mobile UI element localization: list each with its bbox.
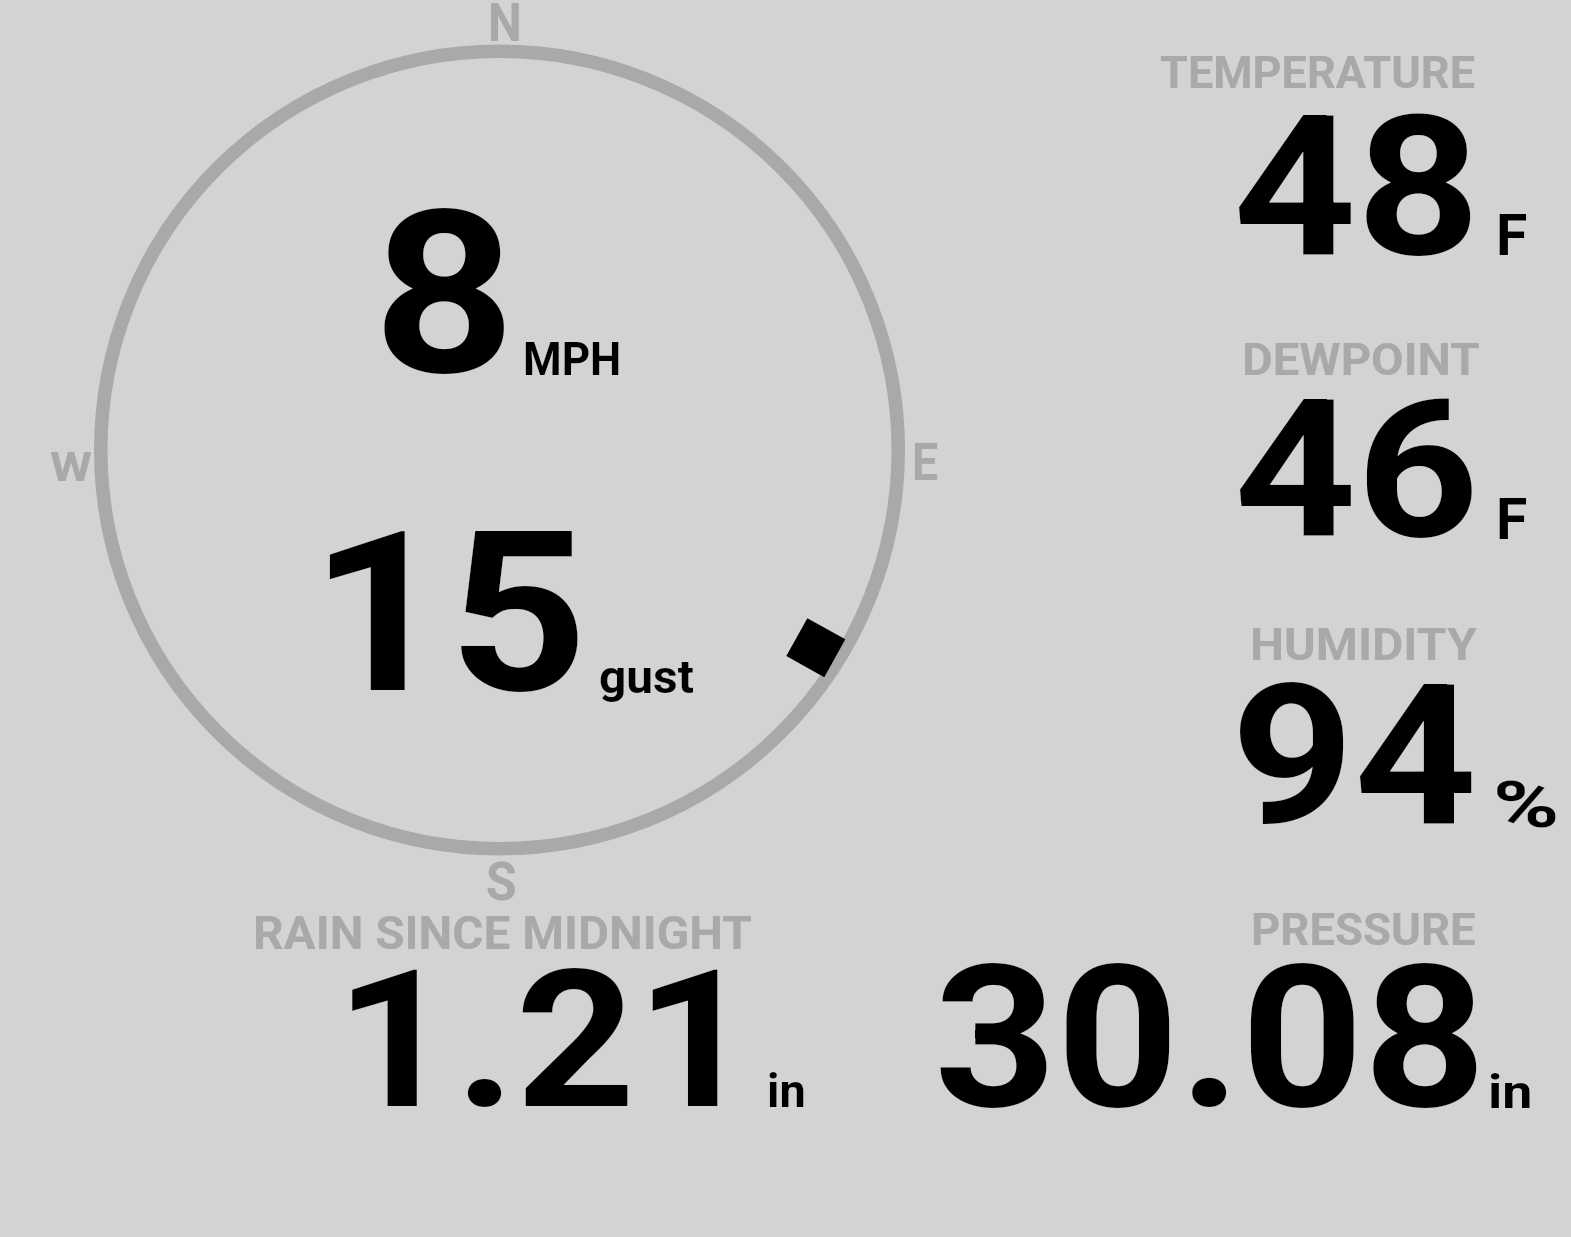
staticText: 1.21 bbox=[335, 928, 756, 1153]
staticText: S bbox=[486, 850, 517, 913]
staticText: N bbox=[488, 0, 522, 54]
staticText: E bbox=[912, 433, 938, 493]
staticText: F bbox=[1496, 202, 1528, 269]
staticText: gust bbox=[599, 650, 695, 704]
staticText: RAIN SINCE MIDNIGHT bbox=[253, 906, 752, 960]
staticText: F bbox=[1496, 486, 1528, 553]
staticText: TEMPERATURE bbox=[1160, 46, 1475, 99]
staticText: DEWPOINT bbox=[1242, 333, 1480, 386]
button[interactable]: Rain since midnight 1.21 inches bbox=[230, 900, 830, 1125]
staticText: HUMIDITY bbox=[1250, 618, 1477, 671]
staticText: in bbox=[767, 1064, 806, 1118]
staticText: PRESSURE bbox=[1251, 903, 1476, 956]
staticText: % bbox=[1493, 768, 1560, 843]
staticText: 15 bbox=[310, 484, 588, 744]
staticText: 46 bbox=[1234, 358, 1480, 583]
staticText: in bbox=[1488, 1065, 1532, 1119]
staticText: 94 bbox=[1231, 643, 1477, 870]
staticText: W bbox=[50, 444, 92, 491]
staticText: 30.08 bbox=[934, 921, 1487, 1154]
button[interactable]: Temperature 48 degrees Fahrenheit bbox=[1130, 40, 1560, 270]
button[interactable]: Wind: 8 miles per hour, gusting 15 bbox=[60, 10, 960, 910]
button[interactable]: Dewpoint 46 degrees Fahrenheit bbox=[1130, 325, 1560, 555]
staticText: MPH bbox=[523, 332, 622, 386]
button[interactable]: Humidity 94 percent bbox=[1130, 610, 1560, 840]
staticText: 8 bbox=[373, 162, 516, 427]
button[interactable]: Pressure 30.08 inches bbox=[920, 895, 1560, 1125]
staticText: 48 bbox=[1233, 74, 1480, 301]
